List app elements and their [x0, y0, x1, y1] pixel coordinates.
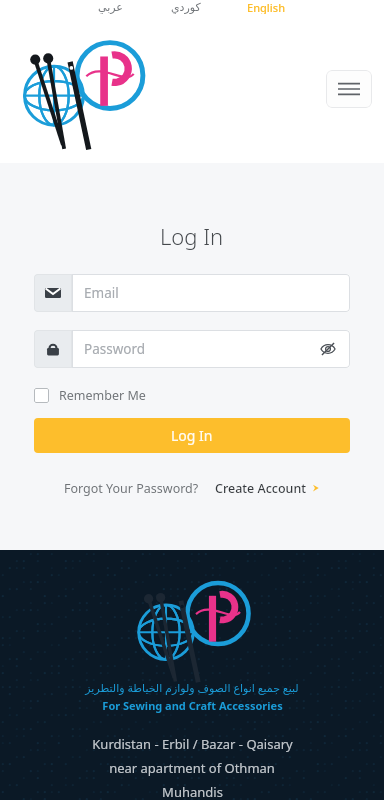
staticText: For Sewing and Craft Accessories [102, 698, 283, 713]
button[interactable]: English [245, 0, 288, 14]
staticText: Password [84, 340, 146, 358]
button[interactable]: Email [34, 274, 350, 312]
button[interactable]: Open menu [326, 70, 372, 108]
staticText: Create Account [215, 480, 307, 497]
staticText: لبيع جميع انواع الصوف ولوازم الخياطة وال… [85, 680, 299, 695]
button[interactable]: Password [34, 330, 350, 368]
staticText: Log In [171, 426, 213, 445]
staticText: Muhandis [162, 783, 223, 800]
staticText: Forgot Your Password? [64, 480, 199, 497]
button[interactable]: Log In [34, 418, 350, 453]
button[interactable]: Create Account [215, 476, 320, 501]
staticText: Email [84, 284, 119, 302]
staticText: Remember Me [59, 387, 146, 404]
button[interactable]: Remember Me [34, 387, 350, 404]
staticText: عربي [98, 1, 123, 14]
staticText: كوردي [171, 1, 201, 14]
staticText: near apartment of Othman [109, 759, 275, 777]
staticText: English [247, 0, 286, 14]
staticText: Kurdistan - Erbil / Bazar - Qaisary [92, 735, 293, 753]
button[interactable]: عربي [96, 1, 125, 14]
button[interactable]: كوردي [169, 1, 203, 14]
button[interactable]: Forgot Your Password? [64, 476, 199, 501]
button[interactable]: Show password [318, 339, 338, 359]
staticText: Log In [160, 221, 224, 251]
